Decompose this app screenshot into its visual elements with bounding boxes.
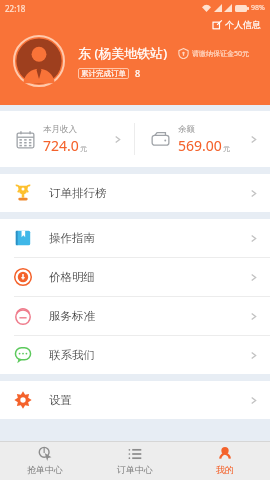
staticText: 22:18 [5, 3, 26, 14]
button[interactable]: 我的 [180, 442, 270, 480]
staticText: 操作指南 [49, 231, 95, 245]
staticText: 请缴纳保证金50元 [192, 49, 250, 59]
staticText: 东 (杨美地铁站) [78, 44, 168, 62]
staticText: 订单中心 [117, 464, 153, 475]
staticText: 设置 [49, 393, 72, 407]
staticText: 724.0 [43, 136, 79, 155]
button[interactable]: 价格明细 [0, 258, 270, 296]
button[interactable]: 抢单中心 [0, 442, 90, 480]
staticText: 元 [223, 144, 230, 153]
staticText: 抢单中心 [27, 464, 63, 475]
button[interactable]: 个人信息 [211, 19, 263, 30]
other: 抢单中心 [38, 447, 52, 461]
staticText: 价格明细 [49, 270, 95, 284]
staticText: 个人信息 [225, 19, 261, 30]
button[interactable]: 订单中心 [90, 442, 180, 480]
other: 我的 [218, 447, 232, 461]
button[interactable]: 服务标准 [0, 297, 270, 335]
staticText: 8 [135, 67, 141, 79]
button[interactable]: 余额 [135, 111, 270, 167]
button[interactable]: 联系我们 [0, 336, 270, 374]
staticText: 余额 [178, 124, 195, 135]
staticText: 我的 [216, 464, 234, 475]
button[interactable]: 操作指南 [0, 219, 270, 257]
staticText: 累计完成订单 [81, 69, 126, 78]
staticText: 订单排行榜 [49, 186, 107, 200]
button[interactable]: 设置 [0, 381, 270, 419]
other: 订单中心 [128, 447, 142, 461]
staticText: 98% [251, 3, 265, 13]
staticText: 元 [80, 144, 87, 153]
button[interactable]: 本月收入 [0, 111, 134, 167]
staticText: 服务标准 [49, 309, 95, 323]
staticText: 本月收入 [43, 124, 77, 135]
staticText: 联系我们 [49, 348, 95, 362]
staticText: 569.00 [178, 136, 222, 155]
button[interactable]: 请缴纳保证金50元 [178, 48, 250, 59]
button[interactable]: 订单排行榜 [0, 174, 270, 212]
